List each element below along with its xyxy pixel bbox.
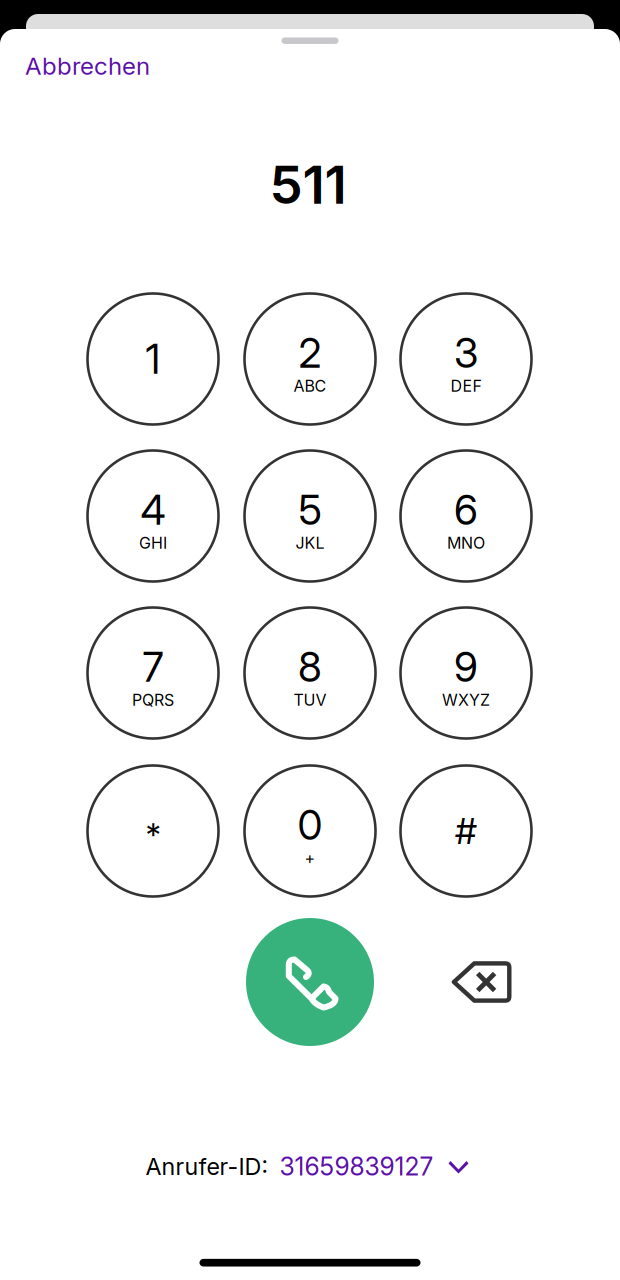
staticText: 4 (140, 485, 165, 534)
staticText: 511 (269, 153, 346, 216)
button[interactable]: 8 (244, 607, 375, 738)
staticText: DEF (450, 376, 481, 396)
staticText: MNO (447, 533, 485, 553)
staticText: WXYZ (442, 690, 490, 710)
staticText: 1 (145, 334, 160, 383)
staticText: ABC (293, 376, 326, 396)
button[interactable]: 4 (87, 450, 218, 581)
staticText: 7 (142, 642, 163, 691)
staticText: 3 (454, 328, 478, 377)
button[interactable]: Call (246, 918, 374, 1046)
staticText: 9 (454, 642, 478, 691)
staticText: TUV (293, 690, 326, 710)
button[interactable]: 3 (400, 293, 531, 424)
staticText: 0 (297, 800, 322, 849)
staticText: # (455, 809, 477, 853)
staticText: 8 (298, 642, 322, 691)
button[interactable]: 7 (87, 607, 218, 738)
button[interactable]: 2 (244, 293, 375, 424)
staticText: 5 (298, 485, 321, 534)
button[interactable]: 0 (244, 765, 375, 896)
button[interactable]: # (400, 765, 531, 896)
staticText: Abbrechen (25, 51, 150, 81)
button[interactable]: 1 (87, 293, 218, 424)
button[interactable]: 6 (400, 450, 531, 581)
staticText: PQRS (132, 690, 174, 710)
staticText: Anrufer-ID: (145, 1152, 267, 1181)
button[interactable]: 9 (400, 607, 531, 738)
staticText: + (304, 848, 315, 868)
staticText: GHI (139, 533, 167, 553)
button[interactable]: Abbrechen (15, 45, 160, 87)
staticText: * (145, 815, 160, 854)
staticText: 2 (298, 328, 321, 377)
staticText: 31659839127 (279, 1151, 433, 1181)
staticText: JKL (295, 533, 324, 553)
staticText: 6 (454, 485, 478, 534)
button[interactable]: 5 (244, 450, 375, 581)
button[interactable]: * (87, 765, 218, 896)
button[interactable]: Anrufer-ID: (145, 1151, 468, 1181)
button[interactable]: Delete (439, 940, 529, 1030)
